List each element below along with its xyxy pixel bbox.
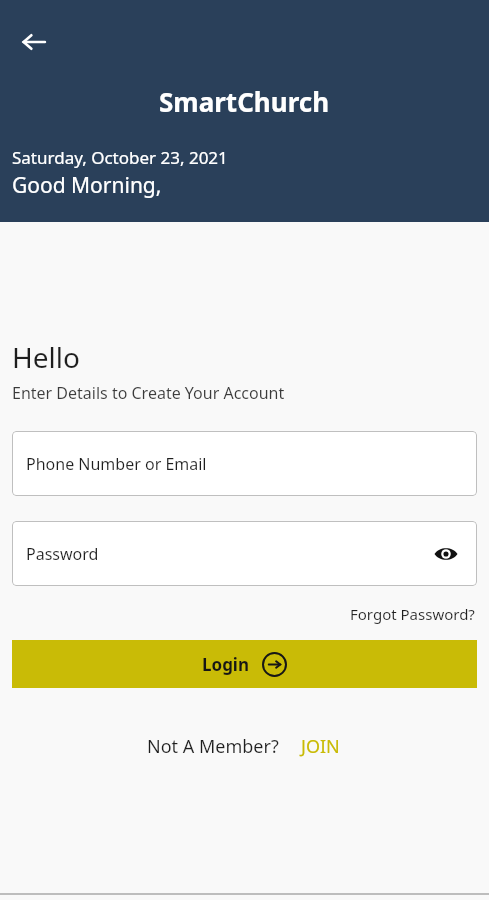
button[interactable]: Phone Number or Email: [12, 431, 477, 496]
staticText: Saturday, October 23, 2021: [12, 146, 228, 169]
staticText: Not A Member?: [147, 734, 279, 759]
staticText: SmartChurch: [159, 84, 330, 119]
staticText: Forgot Password?: [350, 604, 475, 624]
staticText: Password: [26, 543, 99, 565]
staticText: Login: [202, 653, 250, 676]
staticText: Phone Number or Email: [26, 453, 207, 475]
staticText: JOIN: [301, 734, 340, 759]
button[interactable]: Forgot Password?: [348, 602, 477, 626]
staticText: Good Morning,: [12, 171, 162, 200]
button[interactable]: Login: [12, 640, 477, 688]
button[interactable]: Password: [12, 521, 477, 586]
staticText: Hello: [12, 338, 80, 376]
button[interactable]: Back: [10, 18, 58, 66]
staticText: Enter Details to Create Your Account: [12, 382, 285, 404]
button[interactable]: Show password: [431, 539, 461, 569]
button[interactable]: JOIN: [299, 732, 342, 761]
